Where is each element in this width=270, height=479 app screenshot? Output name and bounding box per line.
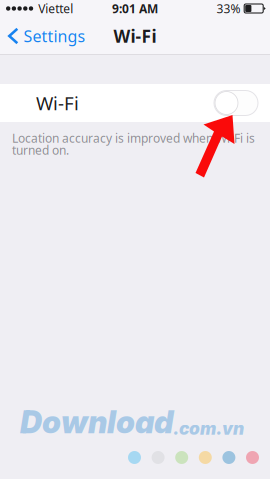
staticText: 33% (216, 0, 240, 16)
staticText: Wi-Fi (36, 91, 79, 115)
staticText: Download (20, 403, 173, 440)
staticText: turned on. (12, 142, 69, 158)
staticText: Viettel (38, 0, 73, 16)
staticText: Wi-Fi (113, 24, 156, 47)
staticText: Settings (24, 25, 86, 47)
button[interactable]: Wi-Fi (0, 84, 270, 122)
staticText: 9:01 AM (112, 0, 158, 16)
button[interactable]: Settings (0, 18, 94, 54)
staticText: Location accuracy is improved when Wi-Fi… (12, 130, 255, 146)
staticText: .com.vn (173, 418, 244, 439)
